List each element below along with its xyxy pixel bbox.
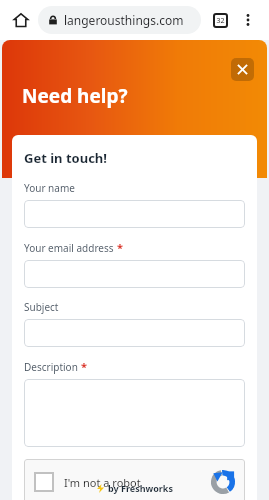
button[interactable] [24,260,245,288]
staticText: Description [24,360,78,374]
button[interactable] [24,200,245,228]
staticText: * [81,359,87,374]
staticText: 32 [216,16,225,26]
button[interactable]: langerousthings.com [38,6,201,34]
button[interactable] [24,319,245,347]
button[interactable]: I'm not a robot checkbox [34,472,54,492]
button[interactable]: Close [231,58,254,81]
staticText: * [117,240,123,255]
staticText: Subject [24,300,59,314]
staticText: by Freshworks [108,482,173,494]
staticText: Get in touch! [24,149,107,167]
staticText: Need help? [22,83,128,109]
button[interactable]: Home [10,9,32,31]
button[interactable]: More options [237,9,259,31]
button[interactable]: by Freshworks [96,482,173,494]
staticText: Your email address [24,241,114,255]
staticText: I'm not a robot [64,475,141,490]
staticText: Your name [24,181,75,195]
button[interactable]: Tabs, 32 open [209,9,231,31]
button[interactable] [24,379,245,447]
staticText: langerousthings.com [64,12,184,28]
